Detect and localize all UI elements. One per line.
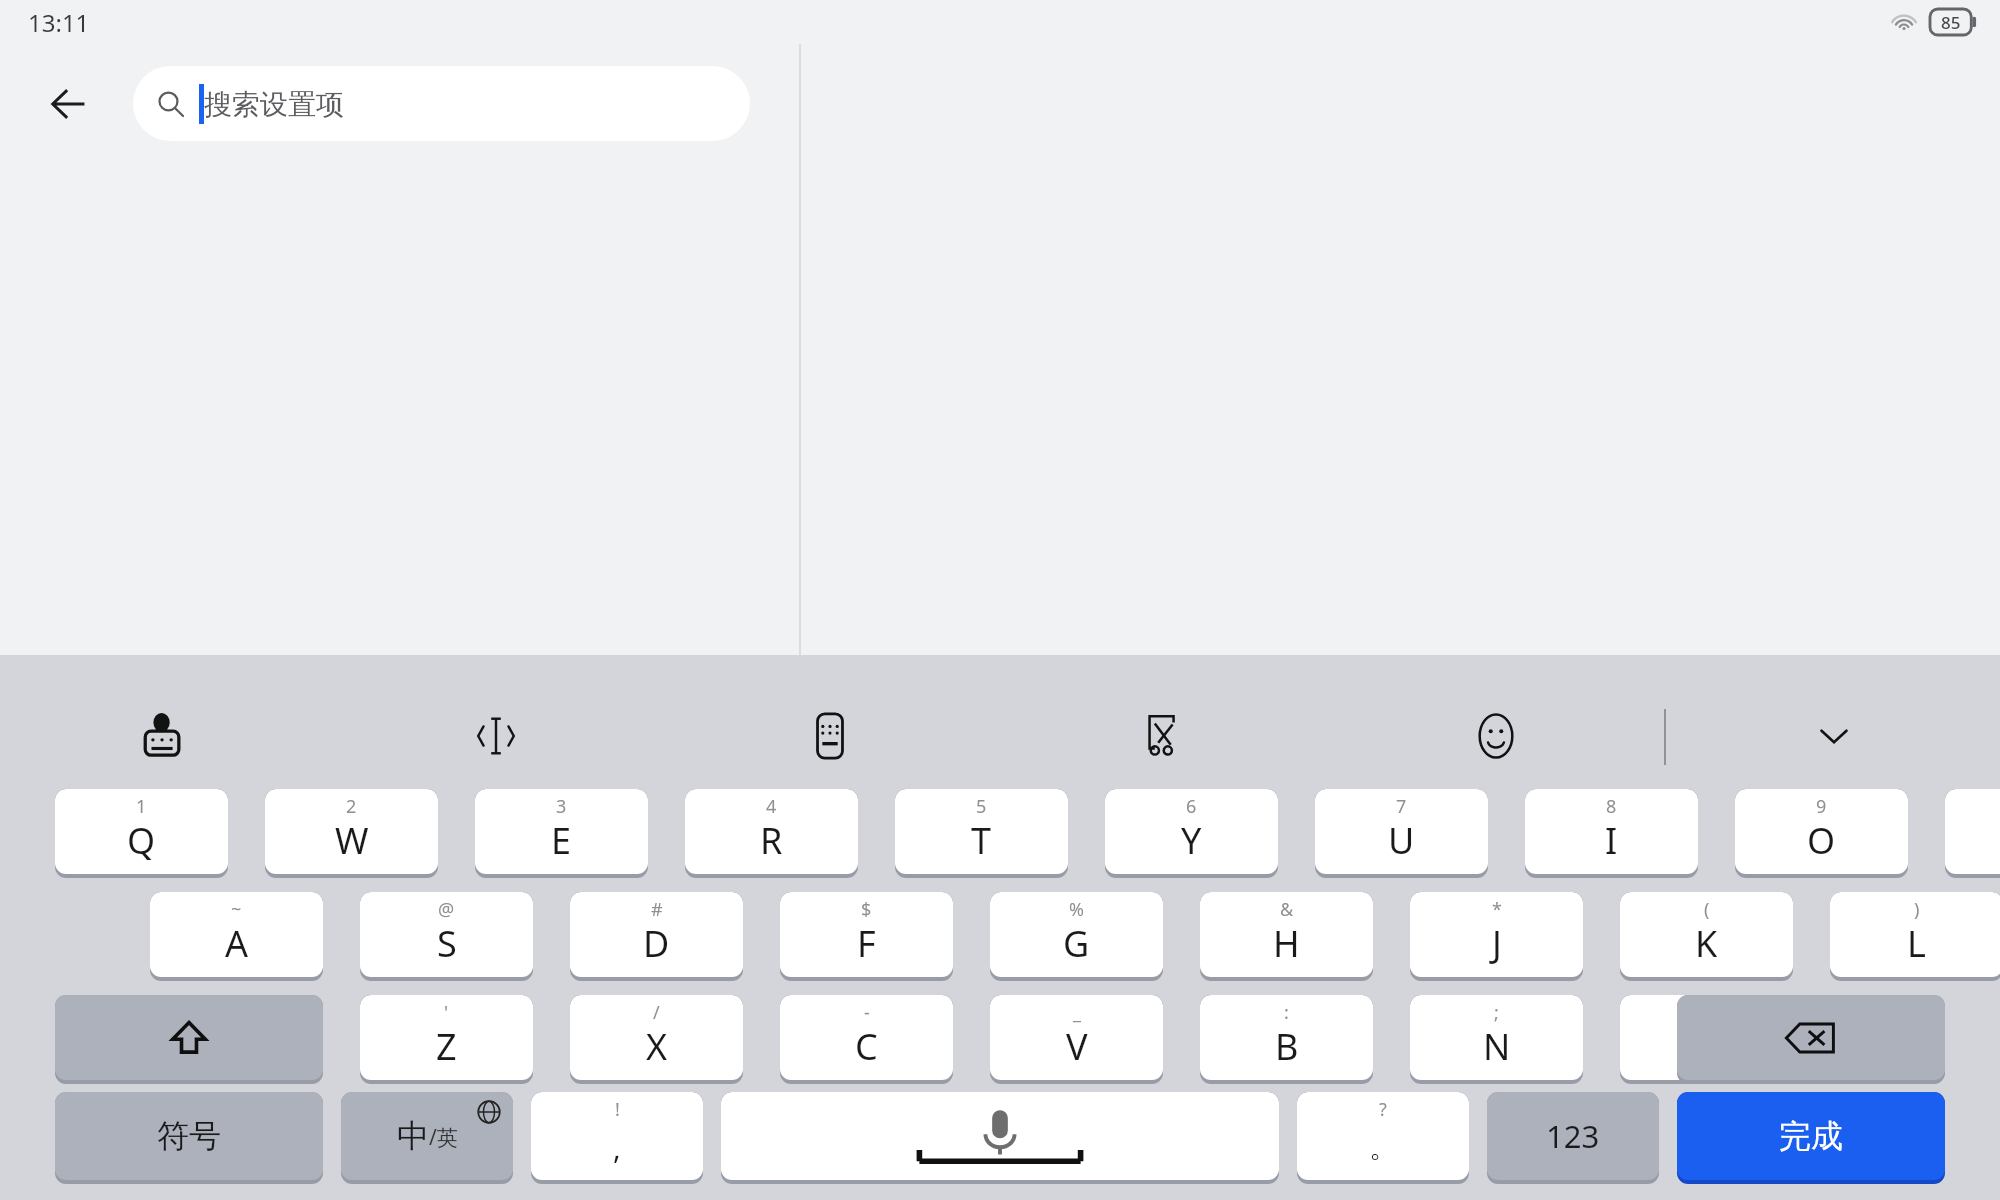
- button[interactable]: &: [1200, 892, 1373, 977]
- button[interactable]: Shift: [55, 995, 323, 1080]
- staticText: &: [1280, 897, 1294, 922]
- staticText: I: [1605, 816, 1618, 865]
- staticText: F: [857, 919, 876, 968]
- button[interactable]: !: [531, 1092, 703, 1180]
- staticText: S: [437, 919, 457, 968]
- button[interactable]: 5: [895, 789, 1068, 874]
- button[interactable]: 完成: [1677, 1092, 1945, 1180]
- button[interactable]: 9: [1735, 789, 1908, 874]
- staticText: 3: [556, 794, 567, 819]
- staticText: 2: [346, 794, 357, 819]
- staticText: *: [1492, 897, 1502, 922]
- button[interactable]: ~: [150, 892, 323, 977]
- button[interactable]: 2: [265, 789, 438, 874]
- button[interactable]: `: [1620, 995, 1793, 1080]
- staticText: T: [971, 816, 992, 865]
- button[interactable]: ;: [1410, 995, 1583, 1080]
- button[interactable]: 4: [685, 789, 858, 874]
- staticText: R: [760, 816, 783, 865]
- button[interactable]: 123: [1487, 1092, 1659, 1180]
- staticText: %: [1069, 897, 1084, 922]
- button[interactable]: 1: [55, 789, 228, 874]
- staticText: @: [438, 897, 455, 922]
- staticText: J: [1492, 919, 1502, 968]
- button[interactable]: Emoji: [1465, 681, 1527, 791]
- button[interactable]: Clipboard: [1132, 681, 1194, 791]
- staticText: U: [1388, 816, 1415, 865]
- button[interactable]: Input method: [132, 681, 194, 791]
- staticText: L: [1907, 919, 1926, 968]
- staticText: K: [1695, 919, 1718, 968]
- button[interactable]: _: [990, 995, 1163, 1080]
- button[interactable]: 3: [475, 789, 648, 874]
- staticText: ?: [1379, 1097, 1387, 1122]
- staticText: /英: [429, 1123, 458, 1152]
- staticText: ;: [1494, 1000, 1499, 1025]
- button[interactable]: Hide keyboard: [1803, 681, 1865, 791]
- staticText: G: [1063, 919, 1090, 968]
- button[interactable]: Backspace: [1677, 995, 1945, 1080]
- staticText: #: [651, 897, 663, 922]
- button[interactable]: %: [990, 892, 1163, 977]
- staticText: Y: [1181, 816, 1202, 865]
- button[interactable]: 7: [1315, 789, 1488, 874]
- button[interactable]: Back: [40, 44, 102, 164]
- staticText: /: [653, 1000, 660, 1025]
- staticText: ): [1914, 897, 1920, 922]
- staticText: 搜索设置项: [204, 87, 344, 122]
- button[interactable]: *: [1410, 892, 1583, 977]
- button[interactable]: Keyboard layout: [799, 681, 861, 791]
- button[interactable]: Move cursor: [465, 681, 527, 791]
- staticText: 1: [136, 794, 147, 819]
- staticText: ': [444, 1000, 449, 1025]
- staticText: 符号: [157, 1116, 221, 1156]
- staticText: 中: [397, 1116, 429, 1156]
- staticText: X: [646, 1022, 668, 1071]
- button[interactable]: ): [1830, 892, 2000, 977]
- staticText: 13:11: [28, 6, 90, 39]
- staticText: W: [335, 816, 369, 865]
- button[interactable]: #: [570, 892, 743, 977]
- staticText: $: [861, 897, 872, 922]
- button[interactable]: Space / Voice input: [721, 1092, 1279, 1180]
- staticText: 8: [1606, 794, 1617, 819]
- staticText: !: [615, 1097, 620, 1122]
- staticText: 。: [1369, 1129, 1398, 1166]
- button[interactable]: :: [1200, 995, 1373, 1080]
- staticText: E: [551, 816, 572, 865]
- button[interactable]: ?: [1297, 1092, 1469, 1180]
- button[interactable]: /: [570, 995, 743, 1080]
- button[interactable]: ': [360, 995, 533, 1080]
- staticText: 9: [1816, 794, 1827, 819]
- staticText: H: [1273, 919, 1300, 968]
- button[interactable]: -: [780, 995, 953, 1080]
- button[interactable]: $: [780, 892, 953, 977]
- staticText: 123: [1546, 1115, 1600, 1157]
- button[interactable]: (: [1620, 892, 1793, 977]
- staticText: ~: [231, 897, 242, 922]
- staticText: 7: [1396, 794, 1407, 819]
- staticText: Q: [127, 816, 156, 865]
- staticText: -: [864, 1000, 870, 1025]
- button[interactable]: 8: [1525, 789, 1698, 874]
- button[interactable]: @: [360, 892, 533, 977]
- button[interactable]: 6: [1105, 789, 1278, 874]
- staticText: 5: [976, 794, 987, 819]
- staticText: :: [1284, 1000, 1289, 1025]
- staticText: ,: [613, 1128, 621, 1167]
- button[interactable]: 中: [341, 1092, 513, 1180]
- staticText: Z: [436, 1022, 457, 1071]
- staticText: _: [1073, 1000, 1081, 1025]
- staticText: O: [1807, 816, 1836, 865]
- staticText: 6: [1186, 794, 1197, 819]
- staticText: N: [1483, 1022, 1511, 1071]
- staticText: 完成: [1779, 1116, 1843, 1156]
- button[interactable]: 符号: [55, 1092, 323, 1180]
- staticText: 4: [766, 794, 777, 819]
- button[interactable]: 0: [1945, 789, 2000, 874]
- staticText: B: [1275, 1022, 1299, 1071]
- staticText: (: [1704, 897, 1710, 922]
- button[interactable]: 搜索设置项: [133, 66, 750, 141]
- staticText: C: [855, 1022, 878, 1071]
